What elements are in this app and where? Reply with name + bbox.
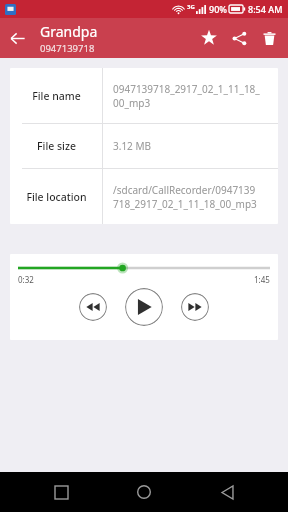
staticText: 1:45 (254, 274, 270, 285)
button[interactable]: File location (10, 169, 278, 224)
staticText: 3G (187, 3, 195, 11)
button[interactable]: Home (122, 472, 166, 512)
staticText: Grandpa (40, 22, 98, 41)
staticText: 8:54 AM (248, 3, 283, 15)
button[interactable]: Back (0, 21, 34, 55)
staticText: File name (32, 89, 81, 103)
staticText: 3.12 MB (113, 139, 152, 153)
button[interactable]: Play (125, 288, 163, 326)
button[interactable]: Seek (18, 262, 270, 274)
button[interactable]: Delete (254, 23, 284, 53)
staticText: File location (26, 190, 87, 204)
staticText: 0947139718 (40, 42, 95, 55)
button[interactable]: Forward (181, 293, 209, 321)
button[interactable]: File name (10, 68, 278, 123)
staticText: /sdcard/CallRecorder/0947139 718_2917_02… (113, 183, 257, 211)
staticText: 0:32 (18, 274, 34, 285)
button[interactable]: Recents (39, 472, 83, 512)
staticText: File size (37, 139, 76, 153)
button[interactable]: Favorite (194, 23, 224, 53)
button[interactable]: Back (205, 472, 249, 512)
button[interactable]: Share (224, 23, 254, 53)
button[interactable]: Rewind (79, 293, 107, 321)
staticText: 90% (209, 3, 227, 15)
button[interactable]: File size (10, 124, 278, 168)
staticText: 0947139718_2917_02_1_11_18_ 00_mp3 (113, 82, 260, 110)
